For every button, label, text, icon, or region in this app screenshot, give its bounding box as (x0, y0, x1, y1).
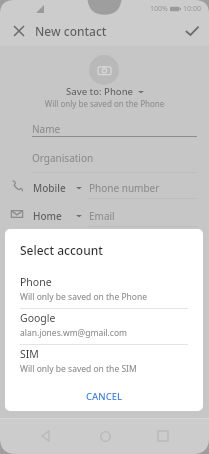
staticText: Home (33, 209, 62, 223)
staticText: Mobile (33, 181, 66, 195)
button[interactable]: Google (5, 309, 203, 344)
staticText: Will only be saved on the SIM (20, 363, 137, 375)
button[interactable]: Save (181, 20, 203, 42)
staticText: CANCEL (86, 390, 123, 403)
button[interactable]: Close (8, 20, 30, 42)
staticText: Phone number (89, 181, 160, 195)
staticText: Will only be saved on the Phone (0, 98, 209, 109)
staticText: 100% (150, 4, 168, 14)
staticText: Save to: Phone (66, 85, 134, 98)
staticText: New contact (35, 23, 107, 39)
staticText: Email (89, 209, 115, 223)
button[interactable]: Recents (151, 424, 175, 448)
staticText: Google (20, 311, 56, 325)
button[interactable]: Home (93, 424, 117, 448)
staticText: alan.jones.wm@gmail.com (20, 327, 128, 339)
staticText: Organisation (32, 151, 94, 165)
staticText: Will only be saved on the Phone (20, 291, 147, 303)
button[interactable]: Back (34, 424, 58, 448)
staticText: Name (32, 122, 61, 136)
button[interactable]: Save to: Phone (0, 85, 209, 98)
button[interactable]: Phone (5, 273, 203, 308)
button[interactable]: SIM (5, 345, 203, 380)
staticText: Select account (20, 242, 103, 258)
staticText: 10:00 (183, 4, 201, 14)
staticText: SIM (20, 347, 39, 361)
button[interactable]: CANCEL (76, 385, 133, 408)
button[interactable]: Add photo (89, 55, 119, 85)
staticText: Phone (20, 275, 52, 289)
